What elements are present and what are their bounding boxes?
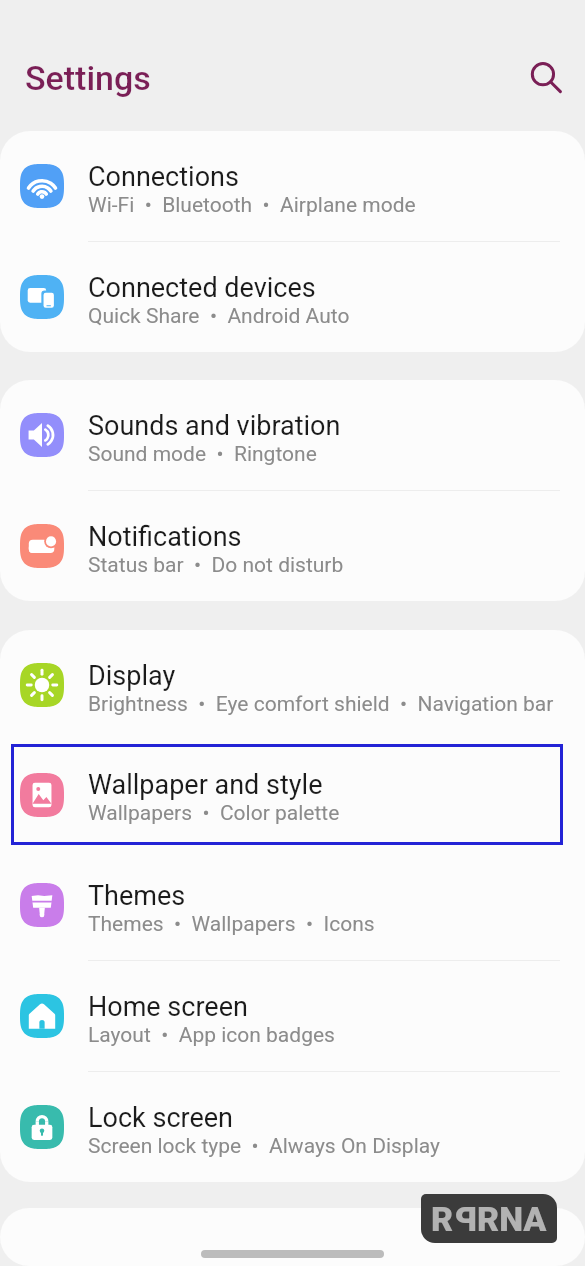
staticText: Home screen	[88, 991, 248, 1023]
staticText: Settings	[25, 58, 151, 98]
button[interactable]: Wallpaper and style	[11, 744, 563, 845]
staticText: Lock screen	[88, 1102, 233, 1134]
button[interactable]: Search	[519, 51, 573, 105]
button[interactable]: Themes	[0, 850, 585, 960]
staticText: Themes • Wallpapers • Icons	[88, 912, 375, 937]
staticText: Themes	[88, 880, 186, 912]
button[interactable]: Display	[0, 630, 585, 740]
staticText: RNA	[477, 1199, 547, 1239]
staticText: Screen lock type • Always On Display	[88, 1134, 440, 1159]
button[interactable]: Connections	[0, 131, 585, 241]
button[interactable]: Home screen	[0, 961, 585, 1071]
staticText: Connected devices	[88, 272, 316, 304]
button[interactable]: Lock screen	[0, 1072, 585, 1182]
staticText: P	[454, 1199, 477, 1239]
staticText: Status bar • Do not disturb	[88, 553, 344, 578]
staticText: Wi-Fi • Bluetooth • Airplane mode	[88, 193, 416, 218]
button[interactable]: Sounds and vibration	[0, 380, 585, 490]
staticText: Sound mode • Ringtone	[88, 442, 317, 467]
staticText: Brightness • Eye comfort shield • Naviga…	[88, 692, 554, 717]
staticText: Wallpapers • Color palette	[88, 801, 340, 826]
staticText: Display	[88, 660, 176, 692]
staticText: Layout • App icon badges	[88, 1023, 335, 1048]
button[interactable]: Notifications	[0, 491, 585, 601]
staticText: Sounds and vibration	[88, 410, 341, 442]
button[interactable]: Connected devices	[0, 242, 585, 352]
staticText: Wallpaper and style	[88, 769, 323, 801]
staticText: Connections	[88, 161, 239, 193]
staticText: R	[431, 1199, 454, 1239]
staticText: Quick Share • Android Auto	[88, 304, 350, 329]
staticText: Notifications	[88, 521, 242, 553]
